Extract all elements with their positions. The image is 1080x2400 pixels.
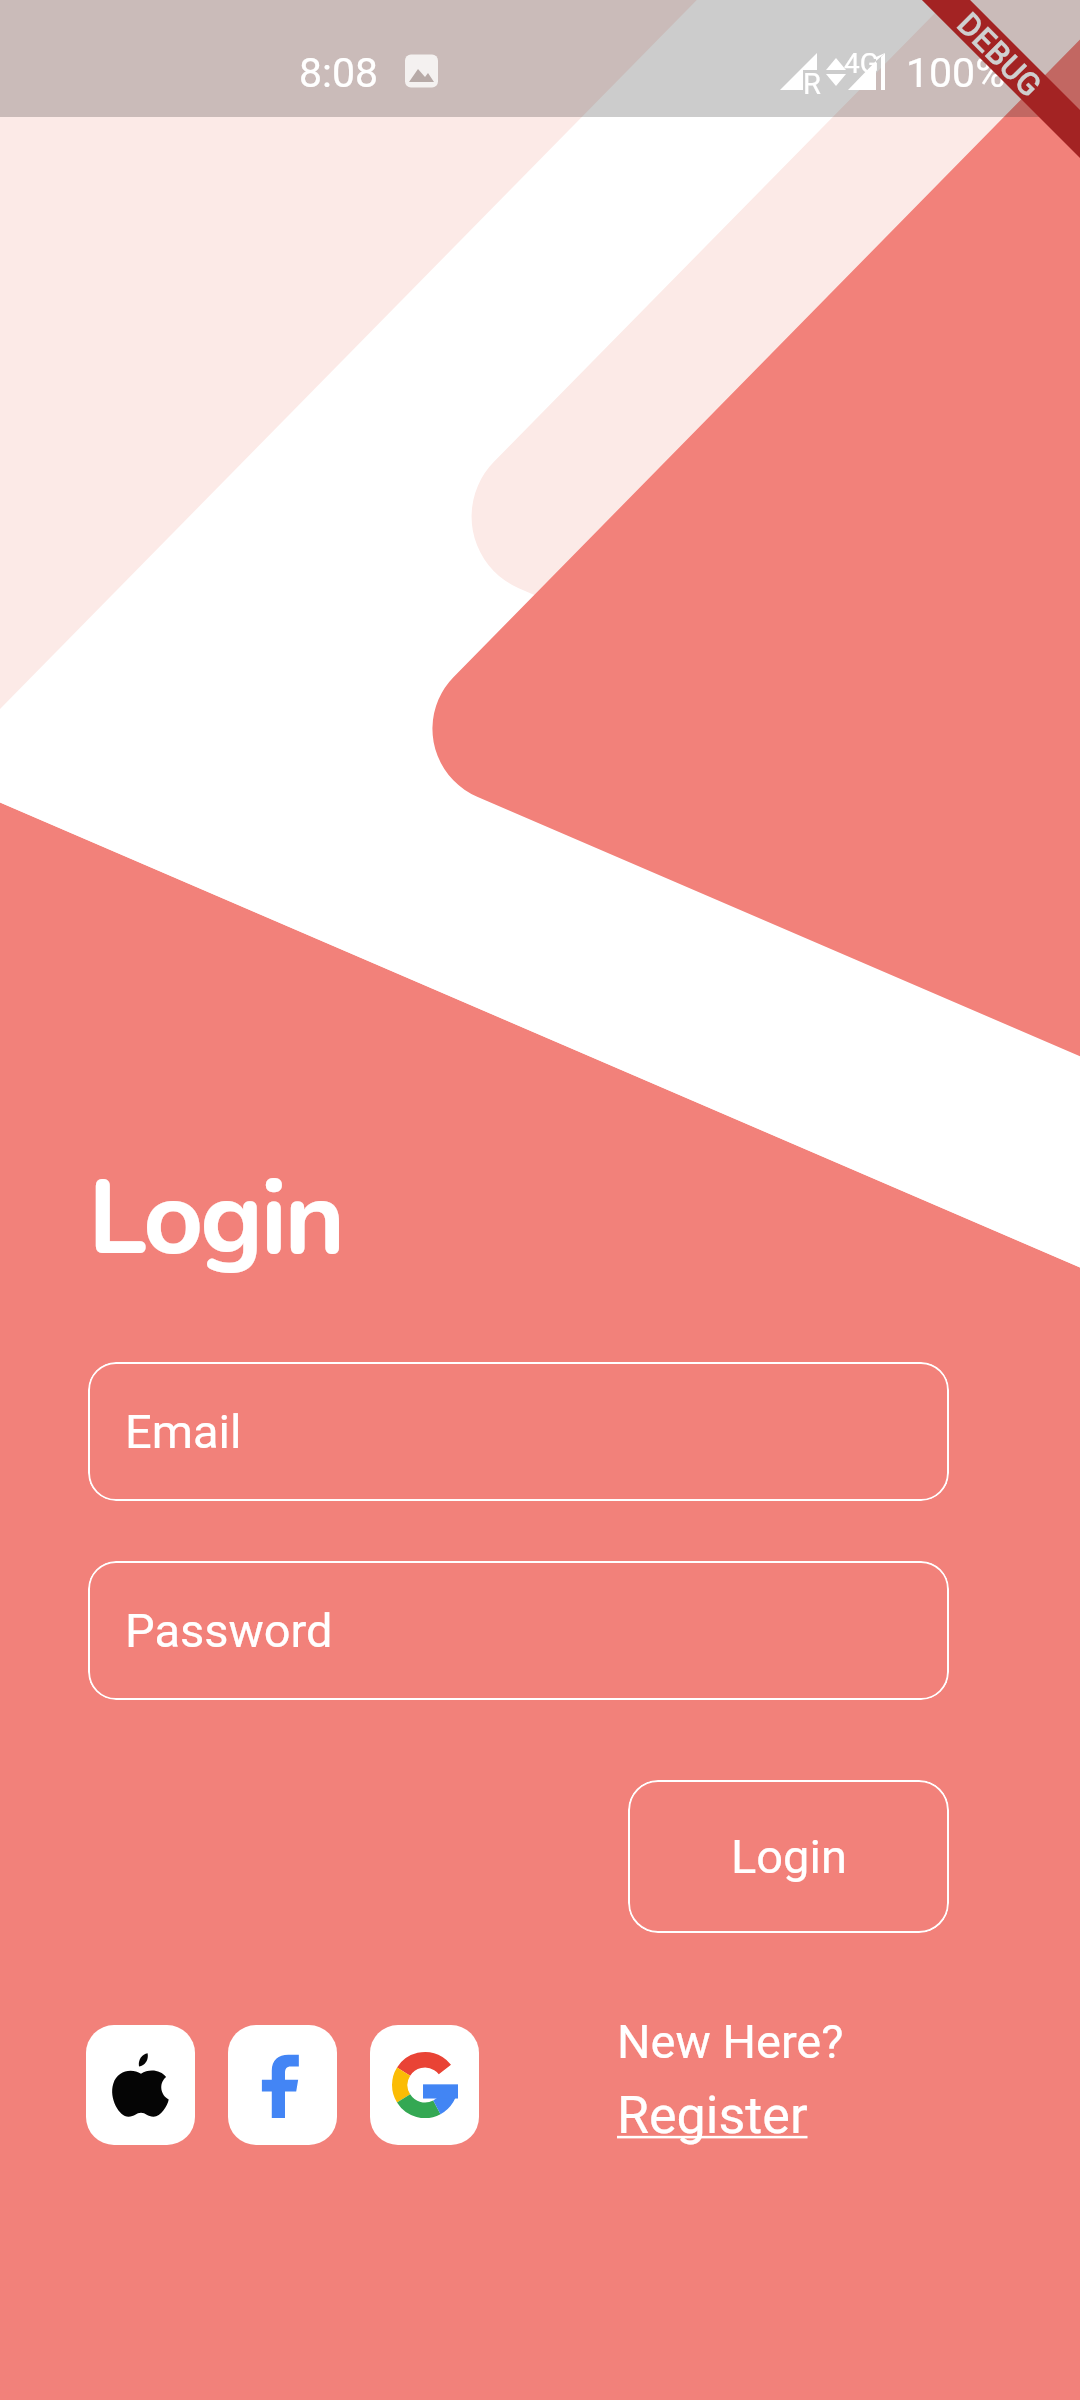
button[interactable]: Password: [88, 1561, 949, 1700]
button[interactable]: Sign in with Google: [370, 2025, 479, 2145]
staticText: 8:08: [299, 49, 379, 97]
button[interactable]: Sign in with Apple: [86, 2025, 195, 2145]
button[interactable]: Sign in with Facebook: [228, 2025, 337, 2145]
staticText: R: [803, 67, 821, 101]
button[interactable]: Register: [617, 2085, 808, 2146]
staticText: 100%: [906, 49, 1006, 97]
staticText: 4G: [844, 47, 879, 80]
staticText: Login: [88, 1148, 343, 1290]
staticText: Login: [731, 1829, 847, 1884]
staticText: Password: [125, 1603, 333, 1658]
button[interactable]: Email: [88, 1362, 949, 1501]
staticText: New Here?: [617, 2014, 844, 2069]
staticText: DEBUG: [950, 5, 1049, 104]
button[interactable]: Login: [628, 1780, 949, 1933]
staticText: Email: [125, 1404, 242, 1459]
